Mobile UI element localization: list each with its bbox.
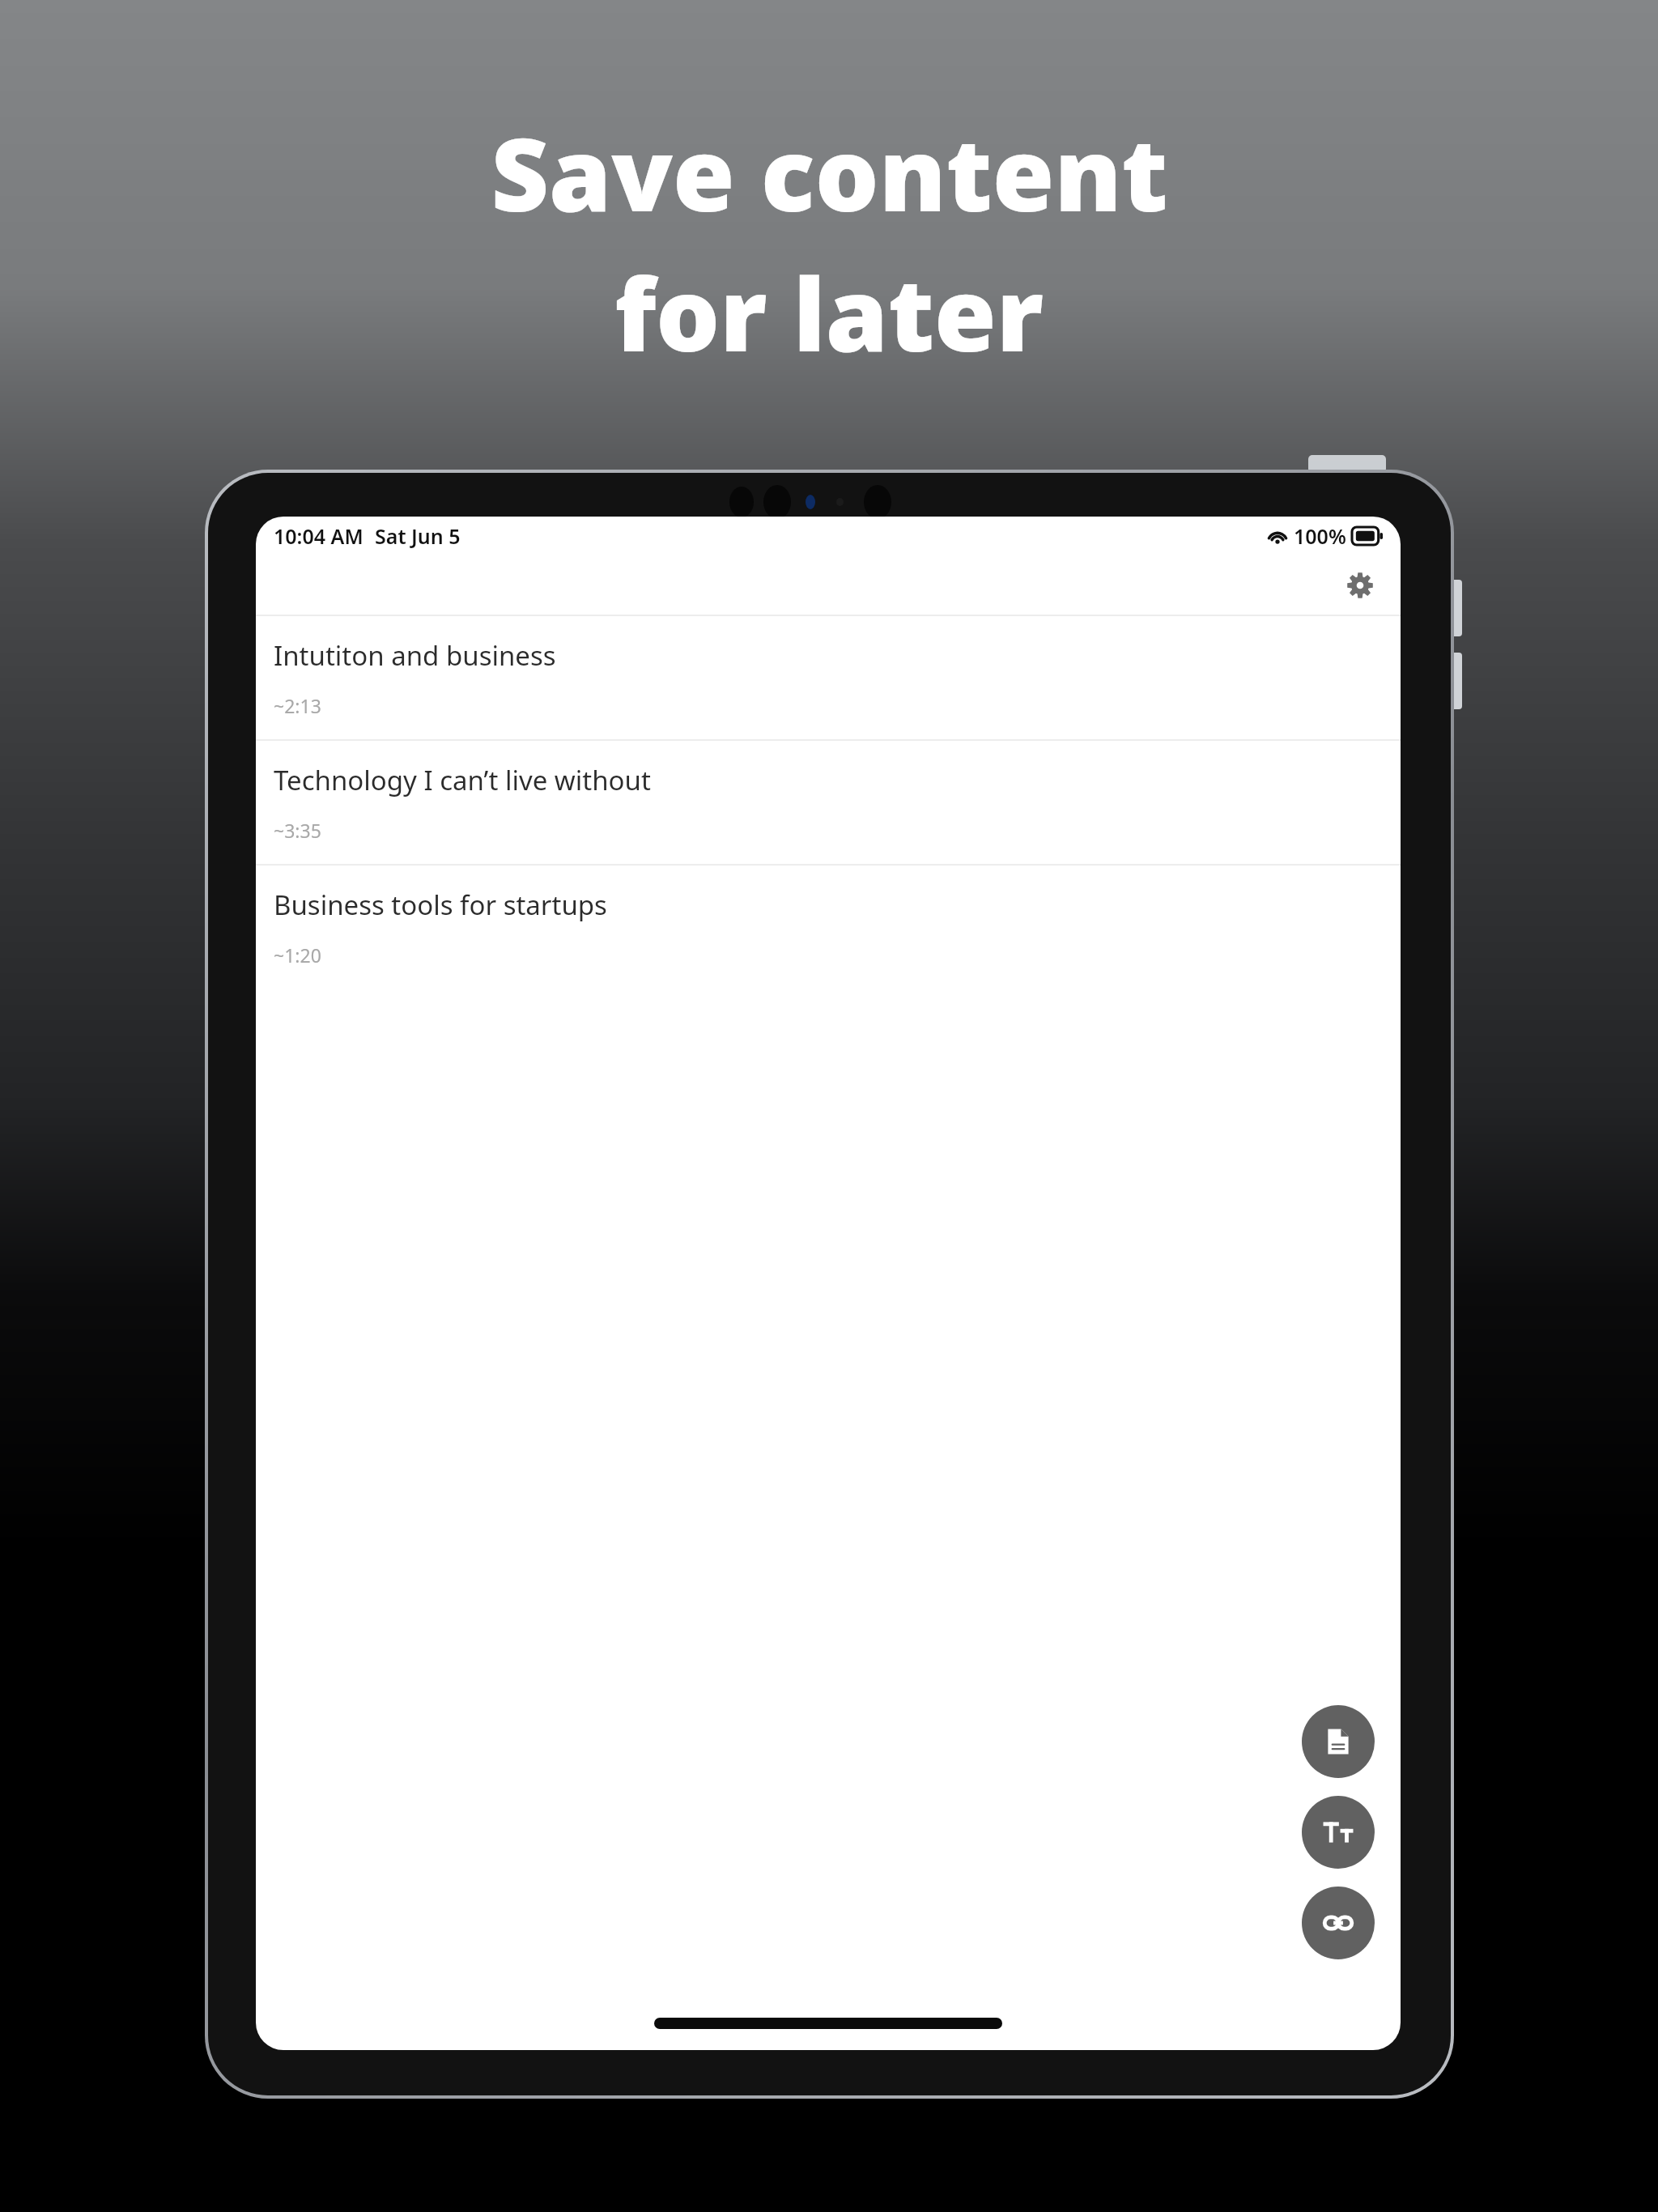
- button[interactable]: Business tools for startups: [256, 866, 1401, 989]
- staticText: Intutiton and business: [274, 637, 556, 674]
- staticText: ~3:35: [274, 818, 321, 843]
- staticText: Technology I can’t live without: [274, 762, 651, 798]
- button[interactable]: Technology I can’t live without: [256, 741, 1401, 864]
- staticText: Business tools for startups: [274, 887, 607, 923]
- staticText: Sat Jun 5: [375, 522, 461, 550]
- button[interactable]: Intutiton and business: [256, 616, 1401, 739]
- staticText: for later: [614, 244, 1044, 381]
- staticText: 100%: [1294, 522, 1346, 550]
- staticText: Save content: [491, 104, 1168, 240]
- button[interactable]: New note: [1302, 1705, 1375, 1778]
- button[interactable]: Add link: [1302, 1887, 1375, 1959]
- button[interactable]: Settings: [1331, 556, 1389, 615]
- staticText: ~2:13: [274, 693, 321, 718]
- staticText: 10:04 AM: [274, 522, 363, 550]
- staticText: ~1:20: [274, 942, 321, 968]
- button[interactable]: Text format: [1302, 1796, 1375, 1869]
